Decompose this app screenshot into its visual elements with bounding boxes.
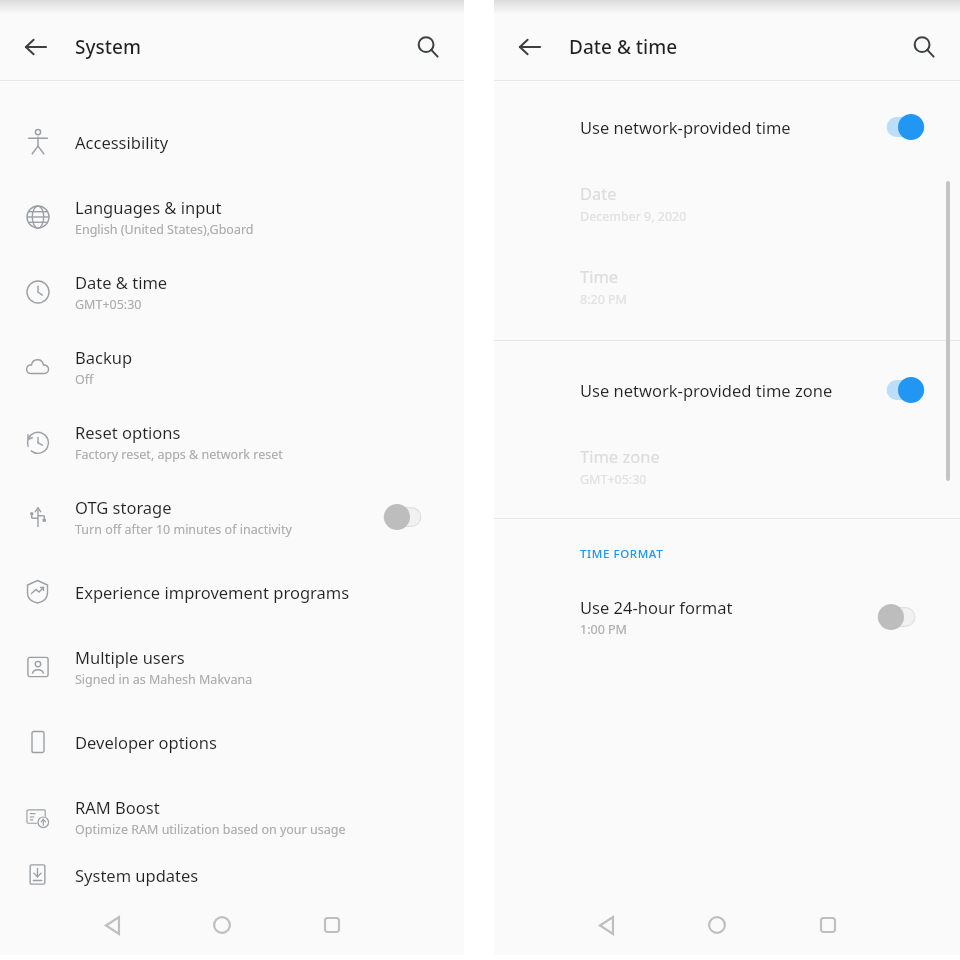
button[interactable]: Time: [494, 245, 960, 328]
button[interactable]: Back: [12, 23, 60, 71]
staticText: December 9, 2020: [580, 208, 687, 225]
button[interactable]: Use network-provided time zone: [494, 355, 960, 425]
button[interactable]: Experience improvement programs: [0, 554, 464, 629]
button[interactable]: Off: [384, 504, 430, 530]
staticText: English (United States),Gboard: [75, 221, 254, 238]
staticText: 1:00 PM: [580, 621, 627, 638]
staticText: Date: [580, 182, 617, 204]
button[interactable]: On: [878, 377, 924, 403]
button[interactable]: Recents: [806, 903, 850, 947]
staticText: Accessibility: [75, 131, 169, 153]
button[interactable]: Languages & input: [0, 179, 464, 254]
button[interactable]: Back: [90, 903, 134, 947]
button[interactable]: Off: [878, 604, 924, 630]
button[interactable]: Backup: [0, 329, 464, 404]
staticText: 8:20 PM: [580, 291, 627, 308]
button[interactable]: Back: [506, 23, 554, 71]
staticText: Reset options: [75, 421, 181, 443]
staticText: Backup: [75, 346, 133, 368]
staticText: Off: [75, 371, 94, 388]
staticText: Experience improvement programs: [75, 581, 350, 603]
button[interactable]: Multiple users: [0, 629, 464, 704]
staticText: Signed in as Mahesh Makvana: [75, 671, 253, 688]
staticText: System: [75, 34, 141, 60]
staticText: OTG storage: [75, 496, 172, 518]
staticText: Date & time: [75, 271, 168, 293]
button[interactable]: Date: [494, 162, 960, 245]
staticText: GMT+05:30: [580, 471, 647, 488]
button[interactable]: Search: [404, 23, 452, 71]
staticText: GMT+05:30: [75, 296, 142, 313]
button[interactable]: System updates: [0, 854, 464, 895]
button[interactable]: Accessibility: [0, 104, 464, 179]
staticText: Use network-provided time zone: [580, 379, 878, 401]
button[interactable]: Time zone: [494, 425, 960, 508]
staticText: Optimize RAM utilization based on your u…: [75, 821, 346, 838]
button[interactable]: Search: [900, 23, 948, 71]
staticText: Time: [580, 265, 619, 287]
staticText: Turn off after 10 minutes of inactivity: [75, 521, 292, 538]
button[interactable]: Recents: [310, 903, 354, 947]
button[interactable]: Home: [695, 903, 739, 947]
button[interactable]: Use network-provided time: [494, 92, 960, 162]
staticText: Time zone: [580, 445, 660, 467]
staticText: Use network-provided time: [580, 116, 878, 138]
button[interactable]: On: [878, 114, 924, 140]
button[interactable]: Back: [584, 903, 628, 947]
button[interactable]: Use 24-hour format: [494, 582, 960, 652]
button[interactable]: Date & time: [0, 254, 464, 329]
button[interactable]: RAM Boost: [0, 779, 464, 854]
button[interactable]: OTG storage: [0, 479, 464, 554]
button[interactable]: Developer options: [0, 704, 464, 779]
staticText: Date & time: [569, 34, 678, 60]
staticText: TIME FORMAT: [580, 546, 664, 562]
staticText: Languages & input: [75, 196, 222, 218]
button[interactable]: Home: [200, 903, 244, 947]
staticText: Factory reset, apps & network reset: [75, 446, 283, 463]
staticText: Developer options: [75, 731, 217, 753]
staticText: Use 24-hour format: [580, 596, 733, 618]
staticText: Multiple users: [75, 646, 185, 668]
staticText: RAM Boost: [75, 796, 160, 818]
button[interactable]: Reset options: [0, 404, 464, 479]
staticText: System updates: [75, 864, 199, 886]
